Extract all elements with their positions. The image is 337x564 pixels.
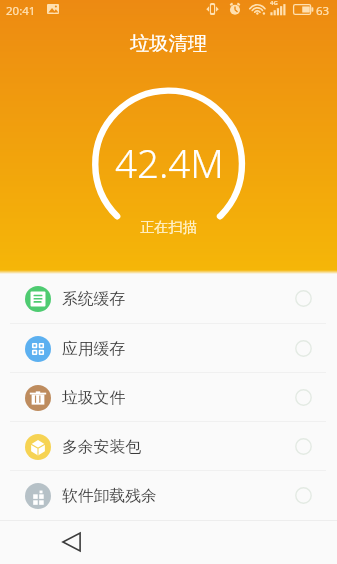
button[interactable]: 系统缓存 <box>0 274 337 323</box>
button[interactable]: Back <box>53 524 89 560</box>
staticText: 20:41 <box>6 3 36 19</box>
staticText: 正在扫描 <box>140 218 198 236</box>
staticText: 软件卸载残余 <box>62 486 157 506</box>
staticText: 42.4M <box>115 137 224 189</box>
staticText: 63 <box>316 3 330 19</box>
button[interactable]: 应用缓存 <box>0 324 337 373</box>
staticText: 系统缓存 <box>62 289 126 309</box>
button[interactable]: 多余安装包 <box>0 422 337 471</box>
staticText: 应用缓存 <box>62 339 126 359</box>
staticText: 垃圾清理 <box>130 31 208 55</box>
button[interactable]: 垃圾文件 <box>0 373 337 422</box>
staticText: 垃圾文件 <box>62 388 126 408</box>
staticText: 4G <box>270 0 278 7</box>
staticText: 多余安装包 <box>62 437 141 457</box>
button[interactable]: 软件卸载残余 <box>0 471 337 520</box>
